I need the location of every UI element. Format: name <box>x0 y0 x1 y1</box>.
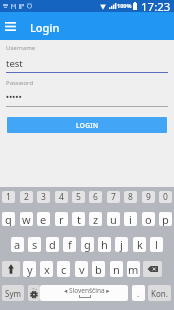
staticText: 7 <box>111 191 116 203</box>
button[interactable]: 7 <box>107 191 120 203</box>
staticText: w <box>22 212 31 226</box>
button[interactable]: m <box>127 261 140 277</box>
button[interactable]: i <box>124 212 137 226</box>
button[interactable]: x <box>40 261 53 277</box>
staticText: u <box>110 212 117 226</box>
button[interactable]: c <box>57 261 70 277</box>
staticText: 5 <box>76 191 81 203</box>
staticText: a <box>14 237 21 252</box>
staticText: 9 <box>146 191 151 203</box>
staticText: o <box>145 212 152 226</box>
button[interactable]: 5 <box>72 191 85 203</box>
button[interactable]: 4 <box>55 191 68 203</box>
button[interactable]: Keyboard settings <box>28 285 40 301</box>
staticText: b <box>95 262 102 277</box>
button[interactable]: h <box>98 237 111 252</box>
button[interactable]: b <box>92 261 105 277</box>
staticText: q <box>5 212 12 226</box>
staticText: l <box>155 237 158 252</box>
staticText: s <box>32 237 38 252</box>
button[interactable]: u <box>107 212 120 226</box>
staticText: 0 <box>163 191 168 203</box>
staticText: c <box>61 262 67 277</box>
staticText: . <box>137 288 140 299</box>
staticText: r <box>59 212 64 226</box>
button[interactable]: 2 <box>20 191 33 203</box>
button[interactable]: Kon. <box>148 285 171 301</box>
button[interactable]: Open navigation drawer <box>3 19 18 34</box>
staticText: ••••• <box>6 92 22 102</box>
button[interactable]: y <box>23 261 36 277</box>
staticText: v <box>79 262 85 277</box>
staticText: 3 <box>41 191 46 203</box>
button[interactable]: . <box>132 285 145 301</box>
staticText: k <box>137 237 143 252</box>
staticText: ◂ Slovenščina ▸ <box>64 286 110 295</box>
button[interactable]: 0 <box>159 191 172 203</box>
button[interactable]: n <box>110 261 123 277</box>
button[interactable]: 8 <box>124 191 137 203</box>
button[interactable]: p <box>159 212 172 226</box>
button[interactable]: t <box>72 212 85 226</box>
staticText: 1 <box>6 191 11 203</box>
staticText: p <box>162 212 169 226</box>
staticText: i <box>129 212 132 226</box>
staticText: d <box>49 237 56 252</box>
button[interactable]: w <box>20 212 33 226</box>
button[interactable]: v <box>75 261 88 277</box>
staticText: 8 <box>128 191 133 203</box>
staticText: Username <box>6 44 36 52</box>
button[interactable]: Space <box>40 285 128 301</box>
button[interactable]: e <box>37 212 50 226</box>
staticText: Password <box>6 79 34 87</box>
staticText: x <box>44 262 50 277</box>
button[interactable]: 3 <box>37 191 50 203</box>
button[interactable]: LOGIN <box>7 117 167 133</box>
button[interactable]: Sym <box>2 285 24 301</box>
button[interactable]: a <box>11 237 24 252</box>
button[interactable]: s <box>28 237 41 252</box>
button[interactable]: f <box>63 237 76 252</box>
staticText: y <box>27 262 33 277</box>
staticText: g <box>84 237 91 252</box>
staticText: 2 <box>24 191 29 203</box>
staticText: n <box>113 262 120 277</box>
button[interactable]: k <box>133 237 146 252</box>
button[interactable]: Shift <box>2 261 20 277</box>
button[interactable]: q <box>2 212 15 226</box>
staticText: m <box>128 262 139 277</box>
staticText: h <box>101 237 108 252</box>
staticText: 17:23 <box>141 0 171 11</box>
button[interactable]: l <box>150 237 163 252</box>
staticText: 100% <box>117 2 132 9</box>
button[interactable]: z <box>89 212 102 226</box>
button[interactable]: r <box>55 212 68 226</box>
button[interactable]: Backspace <box>143 261 162 277</box>
button[interactable]: g <box>81 237 94 252</box>
button[interactable]: d <box>46 237 59 252</box>
staticText: 6 <box>93 191 98 203</box>
staticText: Sym <box>5 288 21 299</box>
staticText: LOGIN <box>76 121 99 130</box>
button[interactable]: 6 <box>89 191 102 203</box>
staticText: 4 <box>59 191 64 203</box>
button[interactable]: j <box>115 237 128 252</box>
staticText: Kon. <box>151 288 168 299</box>
button[interactable]: o <box>142 212 155 226</box>
staticText: e <box>40 212 47 226</box>
button[interactable]: 1 <box>2 191 15 203</box>
staticText: Login <box>30 20 60 35</box>
staticText: f <box>68 237 72 252</box>
staticText: j <box>120 237 123 252</box>
staticText: z <box>93 212 99 226</box>
staticText: t <box>77 212 81 226</box>
staticText: test <box>6 57 23 70</box>
button[interactable]: 9 <box>142 191 155 203</box>
